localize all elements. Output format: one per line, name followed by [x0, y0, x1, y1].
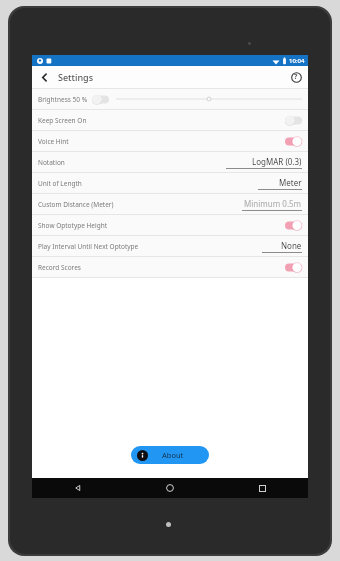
- button[interactable]: Meter: [258, 177, 302, 190]
- staticText: Keep Screen On: [38, 116, 87, 125]
- staticText: Play Interval Until Next Optotype: [38, 242, 139, 251]
- button[interactable]: About: [131, 446, 209, 464]
- button[interactable]: Back: [32, 478, 124, 498]
- staticText: Settings: [58, 71, 94, 83]
- staticText: 10:04: [289, 57, 305, 65]
- button[interactable]: Home: [124, 478, 216, 498]
- button[interactable]: Toggle off: [285, 115, 302, 126]
- staticText: Voice Hint: [38, 137, 69, 146]
- staticText: ?: [294, 72, 298, 82]
- staticText: Record Scores: [38, 263, 81, 272]
- staticText: Meter: [279, 177, 302, 188]
- staticText: None: [281, 240, 302, 251]
- button[interactable]: Record Scores: [32, 257, 308, 277]
- staticText: LogMAR (0.3): [252, 156, 302, 167]
- button[interactable]: Brightness 50 %: [32, 89, 308, 109]
- button[interactable]: Voice Hint: [32, 131, 308, 151]
- button[interactable]: Toggle on: [285, 136, 302, 147]
- staticText: Notation: [38, 158, 65, 167]
- button[interactable]: LogMAR (0.3): [226, 156, 302, 169]
- button[interactable]: Notation: [32, 152, 308, 172]
- button[interactable]: Recent apps: [216, 478, 308, 498]
- button[interactable]: Custom Distance (Meter): [32, 194, 308, 214]
- button[interactable]: Help: [288, 69, 304, 85]
- button[interactable]: Play Interval Until Next Optotype: [32, 236, 308, 256]
- button[interactable]: Toggle on: [285, 262, 302, 273]
- button[interactable]: Toggle off: [92, 94, 109, 105]
- button[interactable]: Keep Screen On: [32, 110, 308, 130]
- button[interactable]: Minimum 0.5m: [242, 198, 302, 211]
- button[interactable]: Show Optotype Height: [32, 215, 308, 235]
- button[interactable]: Toggle on: [285, 220, 302, 231]
- staticText: About: [162, 450, 184, 460]
- staticText: Show Optotype Height: [38, 221, 108, 230]
- button[interactable]: Unit of Length: [32, 173, 308, 193]
- button[interactable]: None: [262, 240, 302, 253]
- staticText: Brightness 50 %: [38, 95, 88, 104]
- staticText: Unit of Length: [38, 179, 82, 188]
- button[interactable]: Back: [36, 69, 52, 85]
- staticText: Minimum 0.5m: [244, 198, 302, 209]
- staticText: Custom Distance (Meter): [38, 200, 114, 209]
